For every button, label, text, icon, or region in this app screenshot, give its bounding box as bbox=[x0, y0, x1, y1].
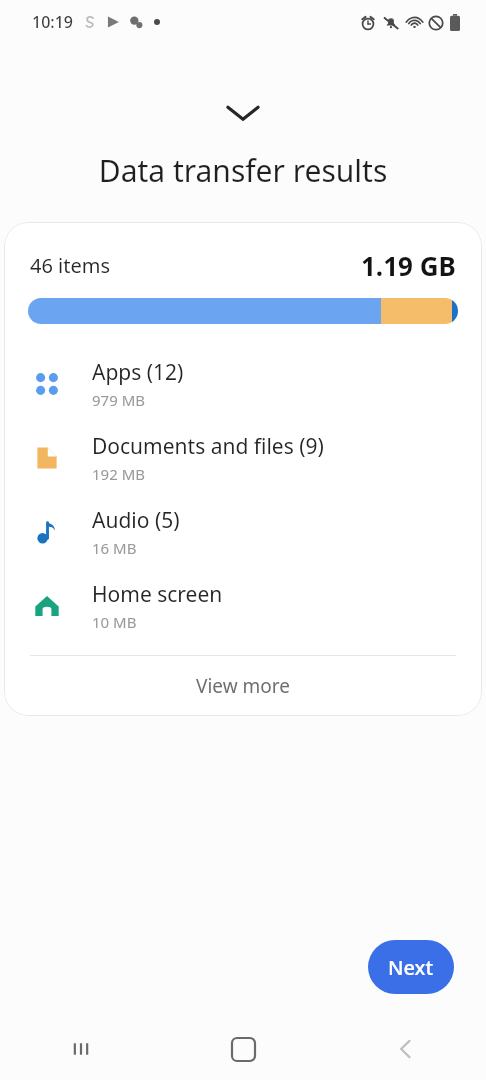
button[interactable]: Home bbox=[162, 1018, 324, 1080]
staticText: Audio (5) bbox=[92, 506, 180, 535]
staticText: Documents and files (9) bbox=[92, 432, 324, 461]
staticText: 16 MB bbox=[92, 538, 137, 558]
staticText: 10:19 bbox=[32, 11, 73, 33]
staticText: Data transfer results bbox=[0, 150, 486, 191]
button[interactable]: Recent apps bbox=[0, 1018, 162, 1080]
staticText: Apps (12) bbox=[92, 358, 184, 387]
button[interactable]: Audio (5) bbox=[4, 495, 482, 569]
button[interactable]: Apps (12) bbox=[4, 347, 482, 421]
staticText: View more bbox=[196, 673, 290, 699]
button[interactable]: View more bbox=[4, 656, 482, 716]
staticText: Next bbox=[388, 954, 434, 981]
button[interactable]: Back bbox=[324, 1018, 486, 1080]
staticText: 46 items bbox=[30, 252, 111, 279]
staticText: 10 MB bbox=[92, 612, 137, 632]
staticText: Home screen bbox=[92, 580, 223, 609]
button[interactable]: Home screen bbox=[4, 569, 482, 643]
staticText: 1.19 GB bbox=[361, 248, 456, 283]
button[interactable]: Documents and files (9) bbox=[4, 421, 482, 495]
staticText: 192 MB bbox=[92, 464, 145, 484]
button[interactable]: Next bbox=[368, 940, 454, 994]
staticText: 979 MB bbox=[92, 390, 145, 410]
